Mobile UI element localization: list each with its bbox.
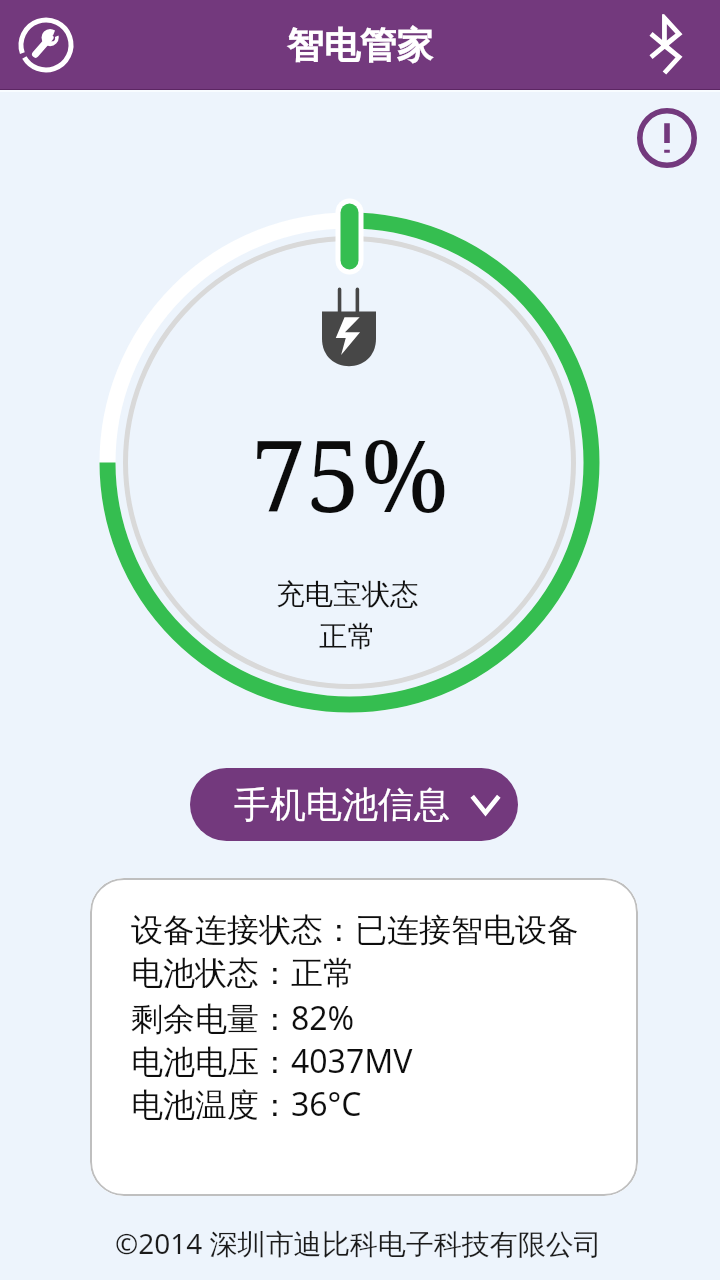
button[interactable]: 手机电池信息 xyxy=(190,768,518,841)
staticText: 充电宝状态 正常 xyxy=(276,577,419,655)
staticText: 75% xyxy=(251,407,449,540)
staticText: 电池温度：36°C xyxy=(131,1082,362,1125)
staticText: 电池电压：4037MV xyxy=(131,1039,413,1082)
staticText: ©2014 深圳市迪比科电子科技有限公司 xyxy=(115,1224,602,1262)
button[interactable]: Warning xyxy=(635,106,699,170)
staticText: 设备连接状态：已连接智电设备 xyxy=(131,910,579,950)
button[interactable]: Settings xyxy=(14,13,78,77)
button[interactable]: Bluetooth xyxy=(634,14,696,76)
staticText: 剩余电量：82% xyxy=(131,996,355,1039)
staticText: 智电管家 xyxy=(287,23,433,69)
staticText: 手机电池信息 xyxy=(234,782,450,827)
staticText: 电池状态：正常 xyxy=(131,953,355,993)
